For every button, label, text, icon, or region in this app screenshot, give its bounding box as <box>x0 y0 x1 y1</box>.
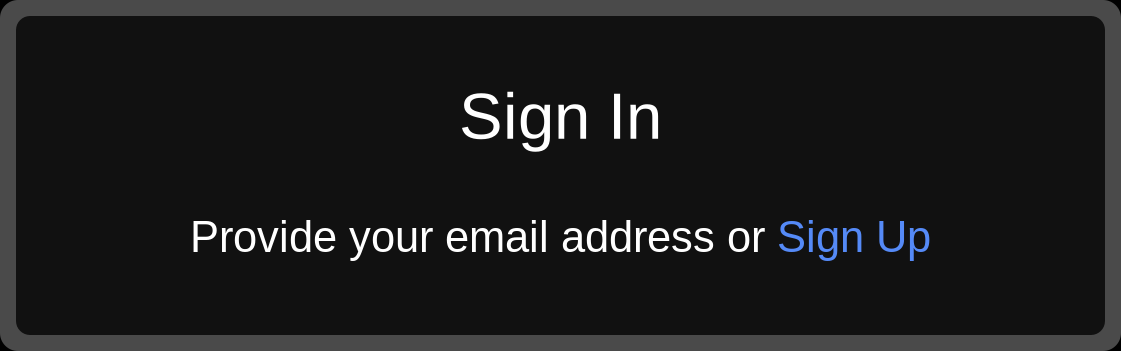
staticText: Sign In <box>459 80 662 153</box>
staticText: Sign Up <box>777 213 931 261</box>
button[interactable]: Sign Up <box>777 213 931 261</box>
staticText: Provide your email address or <box>190 213 777 261</box>
